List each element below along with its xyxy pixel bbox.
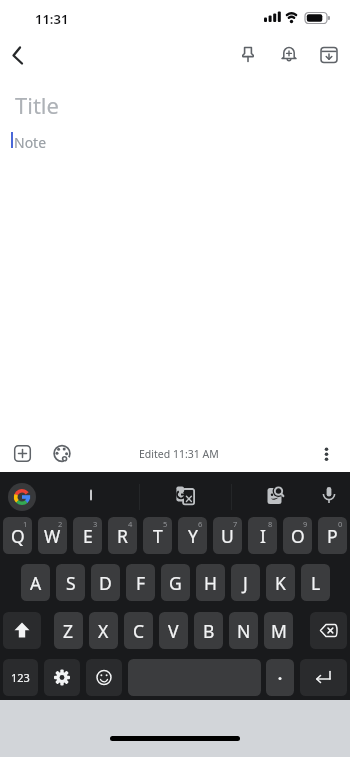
button[interactable] bbox=[86, 659, 122, 696]
staticText: Edited 11:31 AM bbox=[139, 447, 219, 461]
staticText: 11:31 bbox=[35, 10, 69, 28]
staticText: 2 bbox=[58, 519, 63, 529]
button[interactable] bbox=[316, 482, 342, 508]
staticText: M bbox=[271, 619, 287, 643]
staticText: K bbox=[275, 571, 286, 595]
staticText: C bbox=[133, 619, 145, 643]
button[interactable]: S bbox=[56, 564, 85, 601]
button[interactable]: J bbox=[231, 564, 260, 601]
staticText: P bbox=[327, 524, 338, 548]
button[interactable]: I bbox=[248, 517, 277, 554]
staticText: V bbox=[168, 619, 179, 643]
staticText: 3 bbox=[93, 519, 98, 529]
button[interactable]: R bbox=[108, 517, 137, 554]
button[interactable] bbox=[310, 612, 347, 649]
button[interactable] bbox=[266, 659, 294, 696]
staticText: 9 bbox=[303, 519, 308, 529]
button[interactable]: Q bbox=[3, 517, 32, 554]
button[interactable] bbox=[8, 439, 37, 468]
staticText: Z bbox=[63, 619, 74, 643]
button[interactable]: Y bbox=[178, 517, 207, 554]
staticText: E bbox=[83, 524, 93, 548]
staticText: U bbox=[221, 524, 234, 548]
staticText: H bbox=[204, 571, 217, 595]
staticText: Note bbox=[14, 133, 47, 152]
button[interactable]: Z bbox=[54, 612, 83, 649]
button[interactable]: M bbox=[264, 612, 293, 649]
staticText: 7 bbox=[233, 519, 238, 529]
button[interactable] bbox=[315, 41, 343, 69]
staticText: J bbox=[243, 571, 248, 595]
staticText: B bbox=[203, 619, 215, 643]
button[interactable]: H bbox=[196, 564, 225, 601]
staticText: W bbox=[44, 524, 61, 548]
staticText: A bbox=[30, 571, 42, 595]
button[interactable]: X bbox=[89, 612, 118, 649]
button[interactable] bbox=[4, 43, 32, 71]
button[interactable] bbox=[44, 659, 80, 696]
button[interactable]: K bbox=[266, 564, 295, 601]
button[interactable] bbox=[275, 41, 303, 69]
button[interactable]: C bbox=[124, 612, 153, 649]
staticText: R bbox=[117, 524, 128, 548]
staticText: N bbox=[237, 619, 251, 643]
button[interactable]: F bbox=[126, 564, 155, 601]
button[interactable] bbox=[8, 483, 36, 511]
button[interactable]: D bbox=[91, 564, 120, 601]
staticText: G bbox=[169, 571, 182, 595]
staticText: 6 bbox=[198, 519, 203, 529]
button[interactable]: O bbox=[283, 517, 312, 554]
staticText: F bbox=[136, 571, 146, 595]
button[interactable]: P bbox=[318, 517, 347, 554]
button[interactable]: L bbox=[301, 564, 330, 601]
staticText: I bbox=[260, 524, 266, 548]
staticText: L bbox=[311, 571, 321, 595]
button[interactable]: U bbox=[213, 517, 242, 554]
staticText: 123 bbox=[11, 670, 30, 685]
staticText: Y bbox=[188, 524, 198, 548]
button[interactable] bbox=[47, 439, 77, 468]
staticText: Title bbox=[15, 90, 59, 120]
button[interactable]: A bbox=[21, 564, 50, 601]
button[interactable] bbox=[262, 482, 288, 508]
button[interactable]: E bbox=[73, 517, 102, 554]
button[interactable] bbox=[234, 41, 262, 69]
staticText: 4 bbox=[128, 519, 133, 529]
button[interactable]: T bbox=[143, 517, 172, 554]
staticText: T bbox=[153, 524, 163, 548]
staticText: 1 bbox=[23, 519, 28, 529]
staticText: O bbox=[291, 524, 305, 548]
button[interactable] bbox=[300, 659, 347, 696]
button[interactable] bbox=[313, 440, 341, 468]
button[interactable]: 123 bbox=[3, 659, 38, 696]
staticText: D bbox=[99, 571, 112, 595]
button[interactable] bbox=[172, 482, 198, 508]
staticText: Q bbox=[11, 524, 25, 548]
staticText: X bbox=[98, 619, 109, 643]
button[interactable]: V bbox=[159, 612, 188, 649]
button[interactable]: N bbox=[229, 612, 258, 649]
staticText: 0 bbox=[338, 519, 343, 529]
staticText: 5 bbox=[163, 519, 168, 529]
button[interactable]: G bbox=[161, 564, 190, 601]
button[interactable] bbox=[3, 612, 41, 649]
staticText: S bbox=[66, 571, 76, 595]
staticText: 8 bbox=[268, 519, 273, 529]
button[interactable]: W bbox=[38, 517, 67, 554]
button[interactable]: B bbox=[194, 612, 223, 649]
